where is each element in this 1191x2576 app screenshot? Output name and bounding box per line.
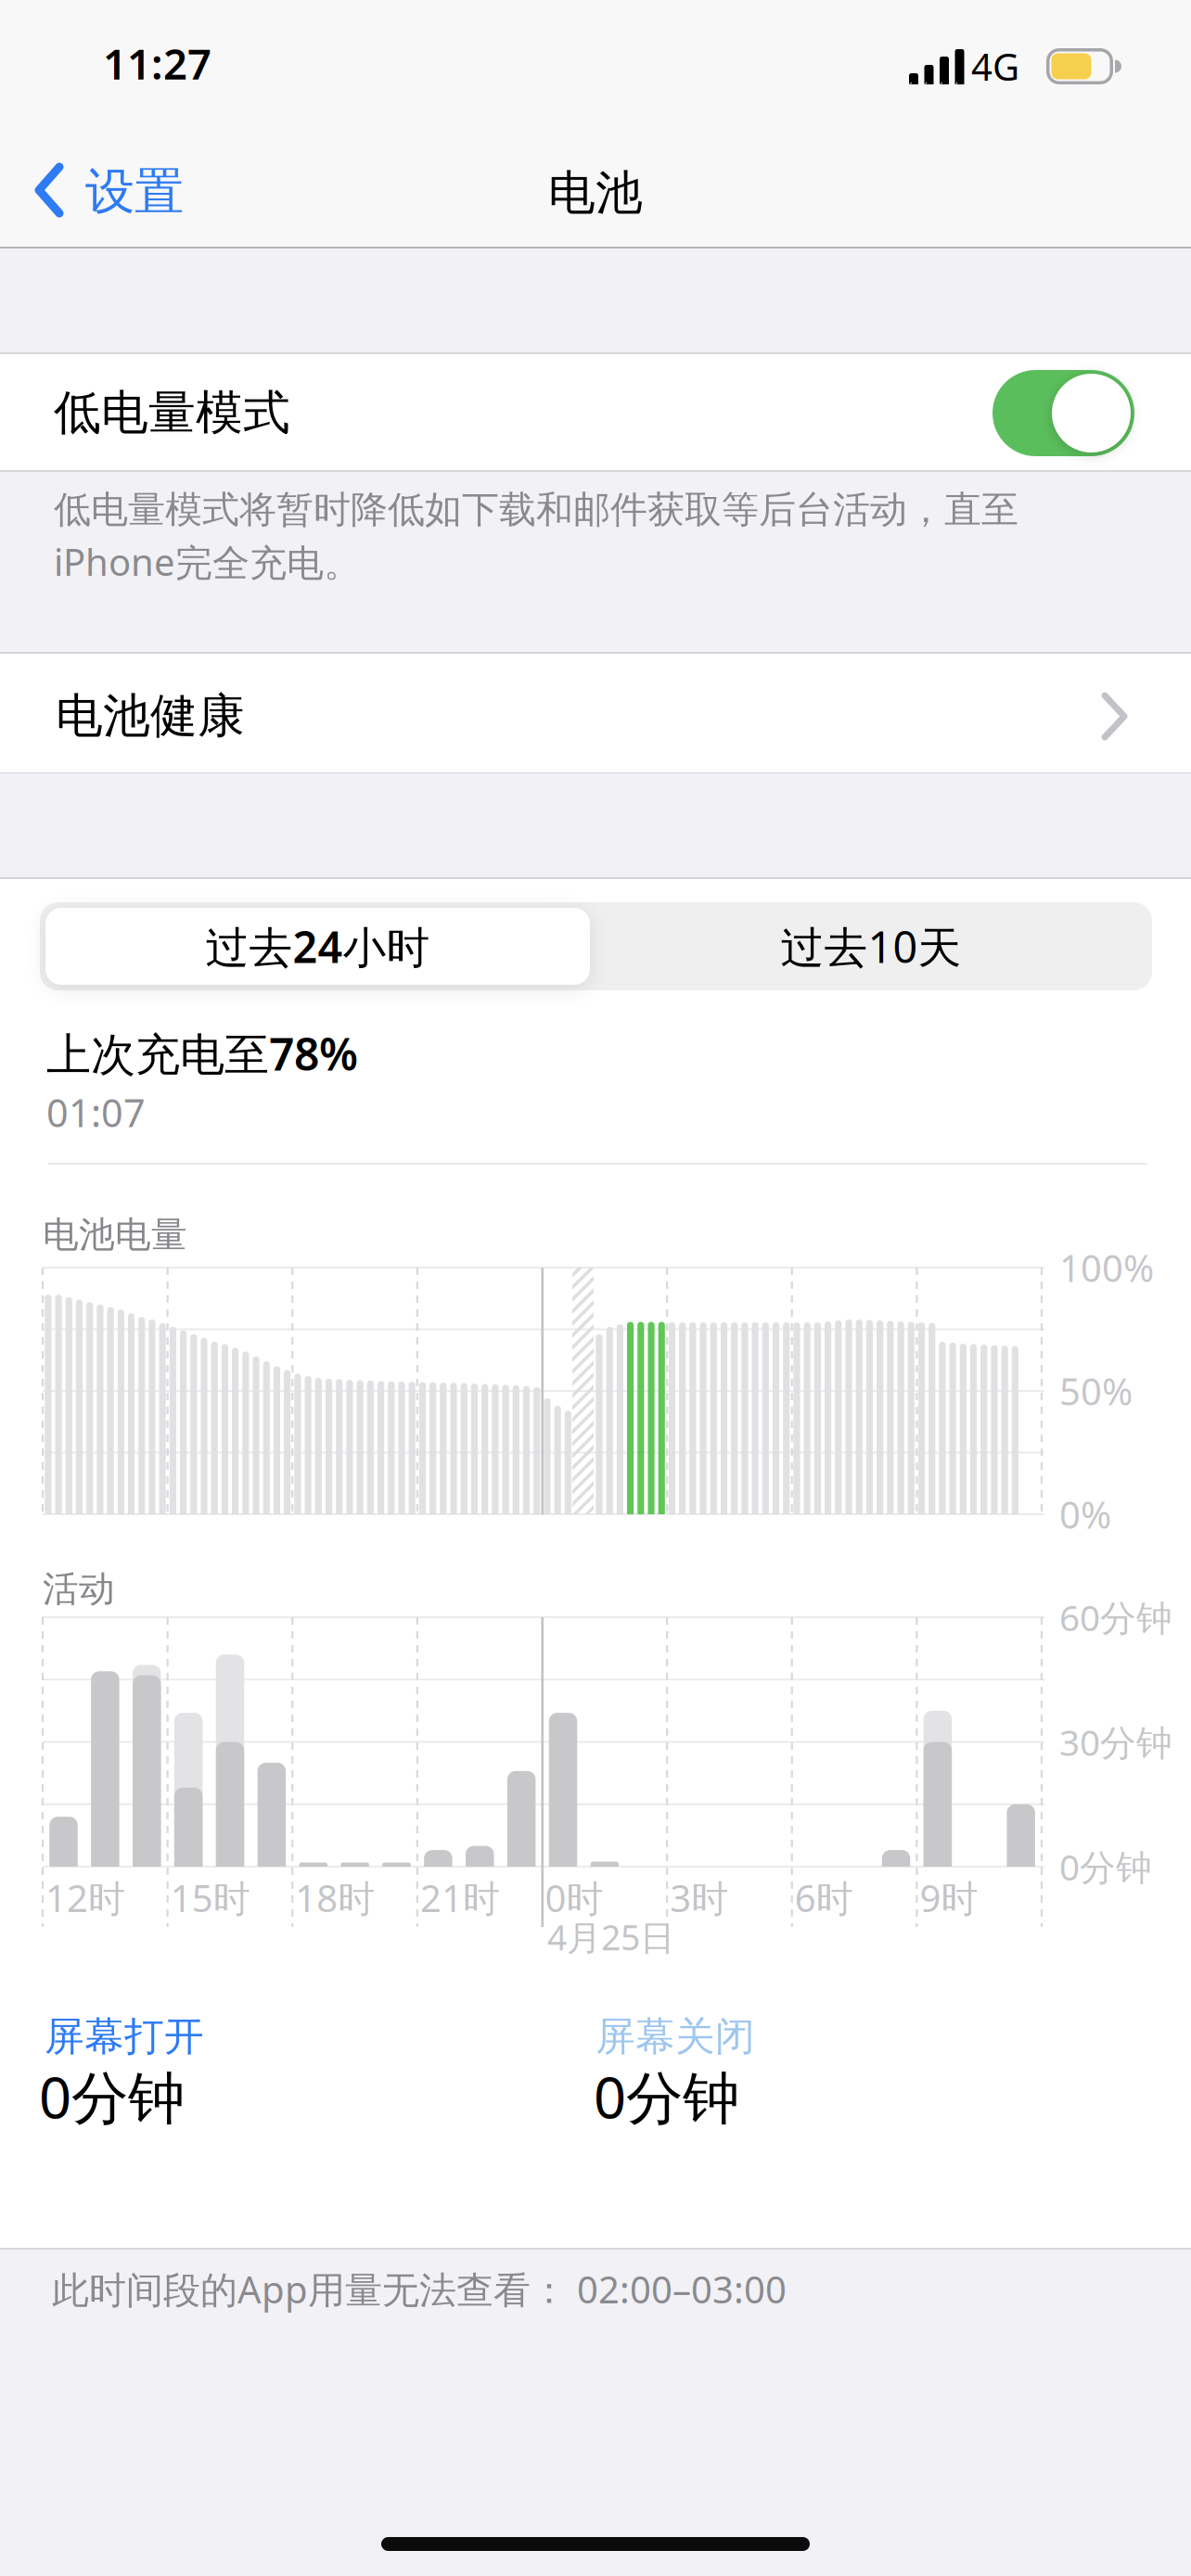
staticText: 活动 — [43, 1567, 115, 1611]
staticText: 4G — [971, 42, 1019, 91]
staticText: 0分钟 — [1059, 1843, 1152, 1890]
staticText: 0分钟 — [594, 2059, 739, 2134]
staticText: 低电量模式将暂时降低如下载和邮件获取等后台活动，直至 — [54, 487, 1018, 532]
staticText: 此时间段的App用量无法查看： 02:00–03:00 — [52, 2264, 787, 2314]
staticText: 屏幕关闭 — [595, 2012, 755, 2061]
staticText: 100% — [1059, 1243, 1154, 1292]
staticText: 电池健康 — [56, 687, 245, 745]
button[interactable]: 屏幕关闭 — [595, 2012, 755, 2061]
staticText: 60分钟 — [1059, 1593, 1172, 1641]
staticText: 屏幕打开 — [45, 2012, 204, 2061]
staticText: 过去24小时 — [205, 918, 430, 975]
staticText: iPhone完全充电。 — [54, 537, 361, 586]
staticText: 11:27 — [103, 35, 211, 91]
button[interactable]: 过去10天 — [595, 908, 1146, 985]
button[interactable]: 过去24小时 — [45, 908, 590, 985]
staticText: 电池 — [548, 164, 643, 222]
staticText: 设置 — [85, 161, 184, 222]
button[interactable]: 低电量模式 — [992, 370, 1134, 456]
staticText: 过去10天 — [781, 918, 961, 975]
staticText: 0% — [1059, 1490, 1111, 1539]
staticText: 6时 — [795, 1873, 853, 1922]
staticText: 上次充电至78% — [46, 1024, 358, 1083]
staticText: 电池电量 — [43, 1213, 187, 1257]
button[interactable]: 屏幕打开 — [45, 2012, 204, 2061]
staticText: 50% — [1059, 1366, 1133, 1416]
staticText: 9时 — [920, 1873, 978, 1922]
staticText: 低电量模式 — [54, 384, 290, 442]
button[interactable]: 返回设置 — [35, 159, 193, 219]
staticText: 15时 — [170, 1873, 250, 1922]
staticText: 0时 — [545, 1873, 603, 1922]
staticText: 4月25日 — [547, 1914, 674, 1960]
staticText: 12时 — [45, 1873, 125, 1922]
button[interactable]: 电池健康 — [0, 657, 1191, 772]
staticText: 3时 — [670, 1873, 728, 1922]
staticText: 30分钟 — [1059, 1718, 1172, 1766]
staticText: 0分钟 — [39, 2059, 185, 2134]
staticText: 01:07 — [46, 1087, 146, 1138]
staticText: 18时 — [295, 1873, 375, 1922]
staticText: 21时 — [420, 1873, 500, 1922]
